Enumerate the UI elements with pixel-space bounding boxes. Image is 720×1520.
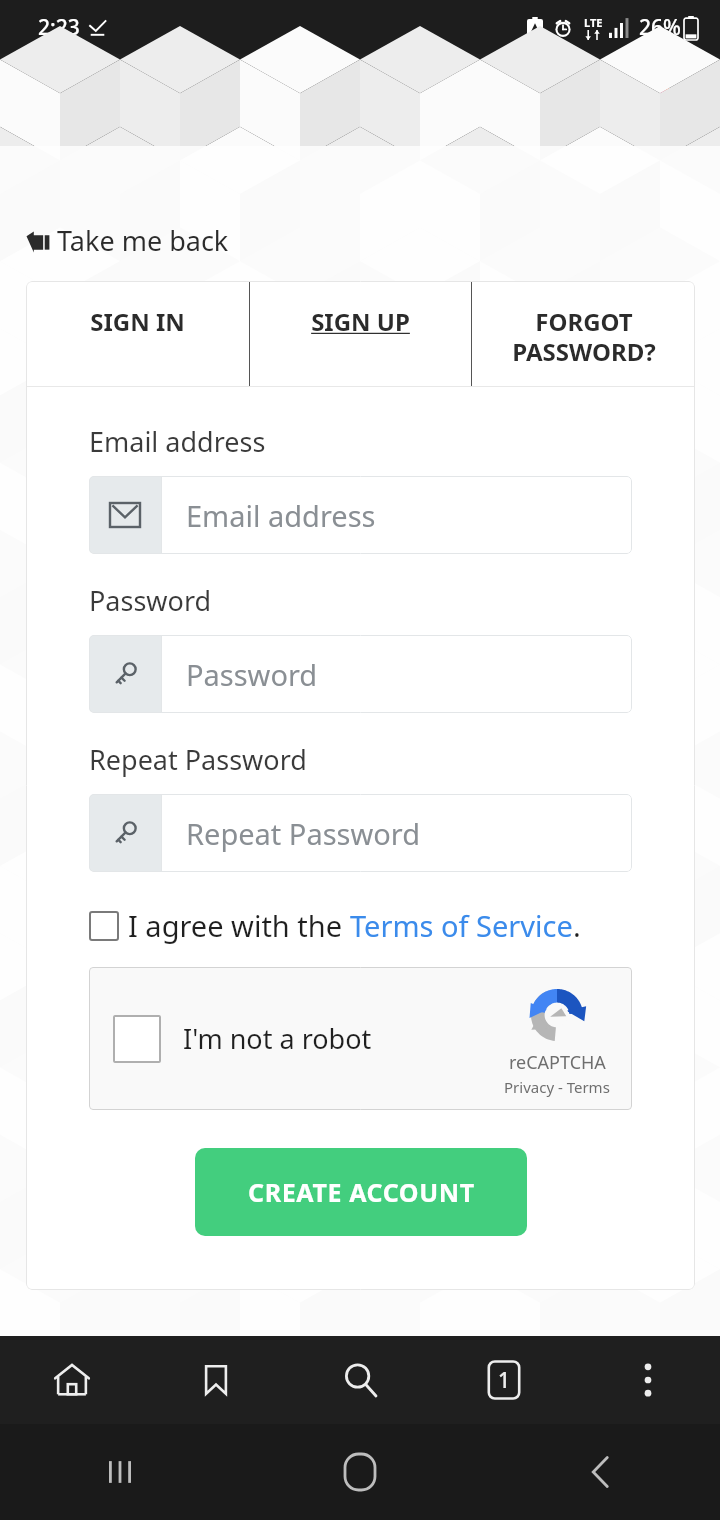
button[interactable]: Search	[288, 1336, 432, 1424]
button[interactable]: Home	[0, 1336, 144, 1424]
staticText: Repeat Password	[186, 814, 421, 853]
staticText: 2:23	[38, 13, 80, 42]
staticText: Repeat Password	[89, 741, 307, 778]
staticText: Take me back	[57, 222, 229, 259]
button[interactable]: Bookmarks	[144, 1336, 288, 1424]
staticText: reCAPTCHA	[509, 1050, 606, 1075]
button[interactable]: Password	[89, 635, 632, 713]
staticText: Email address	[89, 423, 266, 460]
staticText: SIGN UP	[311, 305, 410, 338]
button[interactable]: Tabs	[432, 1336, 576, 1424]
staticText: Password	[186, 655, 318, 694]
button[interactable]: SIGN IN	[26, 281, 249, 386]
button[interactable]: Recent apps	[0, 1424, 240, 1520]
staticText: FORGOT PASSWORD?	[512, 305, 656, 368]
button[interactable]: SIGN UP	[250, 281, 471, 386]
button[interactable]: More options	[576, 1336, 720, 1424]
staticText: SIGN IN	[90, 305, 185, 338]
button[interactable]: I'm not a robot	[89, 967, 632, 1110]
button[interactable]: FORGOT PASSWORD?	[472, 281, 695, 386]
button[interactable]: Back	[480, 1424, 720, 1520]
staticText: .	[573, 906, 581, 945]
staticText: Privacy - Terms	[504, 1077, 610, 1097]
staticText: I agree with the	[128, 906, 350, 945]
button[interactable]: Home	[240, 1424, 480, 1520]
button[interactable]: exchange.ionomy.com/?sign	[16, 68, 704, 132]
staticText: CREATE ACCOUNT	[248, 1175, 475, 1209]
button[interactable]: I agree with the	[89, 906, 581, 945]
staticText: Password	[89, 582, 212, 619]
button[interactable]: CREATE ACCOUNT	[195, 1148, 527, 1236]
button[interactable]: Take me back	[22, 218, 233, 263]
button[interactable]: Terms of Service	[350, 906, 573, 945]
staticText: 26%	[639, 13, 681, 42]
staticText: exchange.ionomy.com/?sign	[68, 82, 574, 119]
button[interactable]: Brave Rewards	[646, 80, 686, 120]
button[interactable]: Email address	[89, 476, 632, 554]
button[interactable]: Repeat Password	[89, 794, 632, 872]
staticText: 1	[498, 1366, 511, 1395]
staticText: I'm not a robot	[183, 1020, 372, 1057]
staticText: Email address	[186, 496, 376, 535]
staticText: LTE	[584, 15, 603, 30]
